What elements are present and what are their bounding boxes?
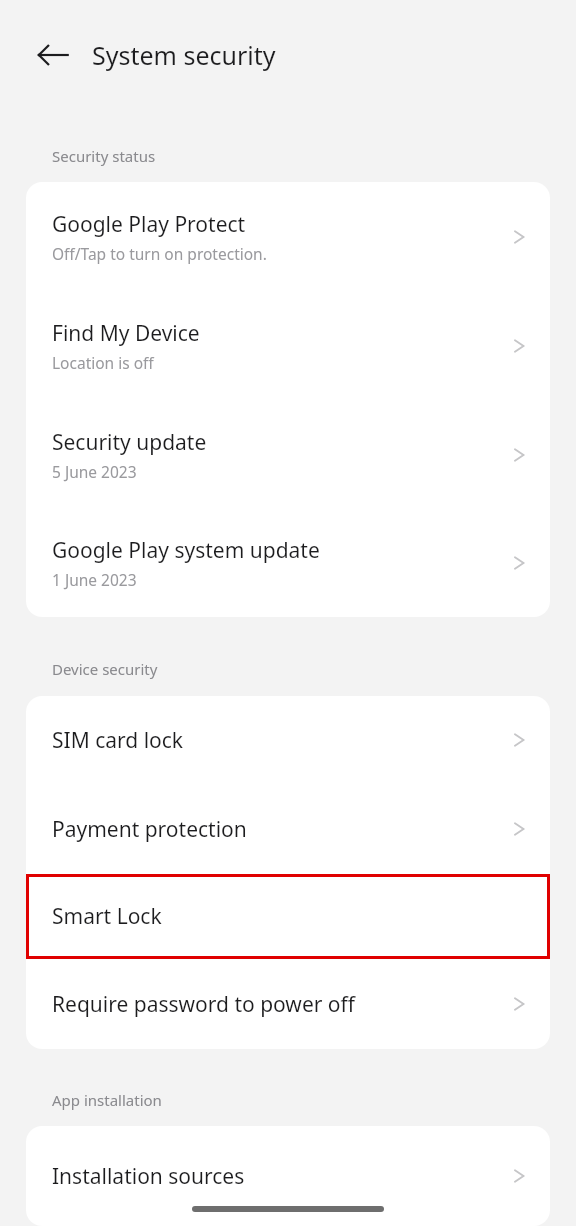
staticText: Security update [52,428,207,457]
button[interactable]: Find My Device [26,291,550,400]
staticText: Smart Lock [52,902,162,931]
staticText: 1 June 2023 [52,569,137,590]
staticText: App installation [52,1090,162,1110]
button[interactable]: Google Play Protect [26,182,550,291]
staticText: Require password to power off [52,990,356,1019]
staticText: Off/Tap to turn on protection. [52,243,267,264]
staticText: Device security [52,659,158,679]
staticText: System security [92,38,276,72]
button[interactable]: Installation sources [26,1126,550,1226]
button[interactable]: Google Play system update [26,509,550,617]
button[interactable]: Security update [26,400,550,509]
staticText: 5 June 2023 [52,461,137,482]
staticText: SIM card lock [52,726,184,755]
staticText: Google Play Protect [52,210,246,239]
staticText: Find My Device [52,319,200,348]
staticText: Security status [52,146,156,166]
button[interactable]: Payment protection [26,784,550,874]
staticText: Payment protection [52,815,247,844]
button[interactable]: SIM card lock [26,696,550,784]
staticText: Google Play system update [52,536,320,565]
button[interactable]: Require password to power off [26,959,550,1049]
button[interactable]: Back [26,28,80,82]
staticText: Installation sources [52,1162,245,1191]
staticText: Location is off [52,352,154,373]
button[interactable]: Smart Lock [26,874,550,959]
